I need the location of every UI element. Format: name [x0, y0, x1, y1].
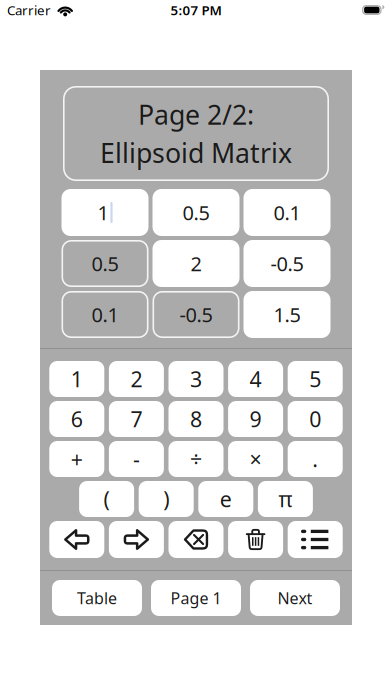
staticText: 0.1	[273, 199, 300, 226]
staticText: +	[71, 445, 83, 473]
button[interactable]: Move right	[109, 521, 164, 558]
staticText: Carrier	[7, 1, 51, 19]
button[interactable]: 1	[49, 361, 104, 397]
staticText: ÷	[190, 445, 202, 473]
button[interactable]: +	[49, 441, 104, 477]
button[interactable]: 9	[228, 401, 283, 437]
button[interactable]: 3	[168, 361, 223, 397]
button[interactable]: )	[139, 481, 194, 517]
button[interactable]: 8	[168, 401, 223, 437]
button[interactable]: -	[109, 441, 164, 477]
button[interactable]: π	[258, 481, 313, 517]
staticText: .	[312, 445, 318, 473]
staticText: -	[133, 445, 140, 473]
staticText: 0.5	[91, 250, 118, 277]
button[interactable]: 2	[109, 361, 164, 397]
staticText: 5	[309, 365, 321, 393]
staticText: 8	[190, 405, 202, 433]
button[interactable]: .	[288, 441, 343, 477]
staticText: 2	[190, 250, 201, 277]
staticText: -0.5	[270, 250, 303, 277]
staticText: Page 2/2:	[138, 97, 254, 132]
staticText: 0.1	[91, 301, 118, 328]
staticText: 4	[250, 365, 262, 393]
button[interactable]: Move left	[49, 521, 104, 558]
staticText: 2	[130, 365, 142, 393]
button[interactable]: 0	[288, 401, 343, 437]
button[interactable]: (	[79, 481, 134, 517]
button[interactable]: 4	[228, 361, 283, 397]
staticText: ×	[250, 445, 262, 473]
staticText: 9	[250, 405, 262, 433]
button[interactable]: List	[288, 521, 343, 558]
staticText: (	[104, 485, 110, 513]
staticText: Page 1	[170, 587, 221, 609]
staticText: 0	[309, 405, 321, 433]
staticText: 0.5	[182, 199, 209, 226]
staticText: π	[278, 485, 292, 513]
button[interactable]: -0.5	[243, 240, 330, 287]
button[interactable]: 1	[61, 189, 148, 236]
staticText: Ellipsoid Matrix	[100, 135, 292, 170]
button[interactable]: 0.1	[243, 189, 330, 236]
staticText: 3	[190, 365, 202, 393]
button[interactable]: 6	[49, 401, 104, 437]
staticText: Next	[277, 587, 312, 609]
button[interactable]: Clear	[228, 521, 283, 558]
button[interactable]: 0.5	[61, 240, 148, 287]
staticText: 6	[71, 405, 83, 433]
staticText: 1	[71, 365, 83, 393]
button[interactable]: 2	[152, 240, 239, 287]
staticText: 1.5	[273, 301, 300, 328]
staticText: e	[220, 485, 232, 513]
button[interactable]: 5	[288, 361, 343, 397]
button[interactable]: Next	[250, 580, 340, 616]
staticText: 1	[97, 199, 108, 226]
button[interactable]: Table	[52, 580, 142, 616]
staticText: 7	[130, 405, 142, 433]
button[interactable]: Delete	[168, 521, 223, 558]
button[interactable]: 7	[109, 401, 164, 437]
staticText: Table	[77, 587, 117, 609]
button[interactable]: ×	[228, 441, 283, 477]
button[interactable]: 0.1	[61, 291, 148, 338]
staticText: 5:07 PM	[170, 1, 221, 19]
staticText: )	[163, 485, 169, 513]
button[interactable]: 0.5	[152, 189, 239, 236]
button[interactable]: ÷	[168, 441, 223, 477]
button[interactable]: Page 1	[151, 580, 241, 616]
button[interactable]: -0.5	[152, 291, 239, 338]
button[interactable]: 1.5	[243, 291, 330, 338]
button[interactable]: e	[198, 481, 253, 517]
staticText: -0.5	[179, 301, 212, 328]
